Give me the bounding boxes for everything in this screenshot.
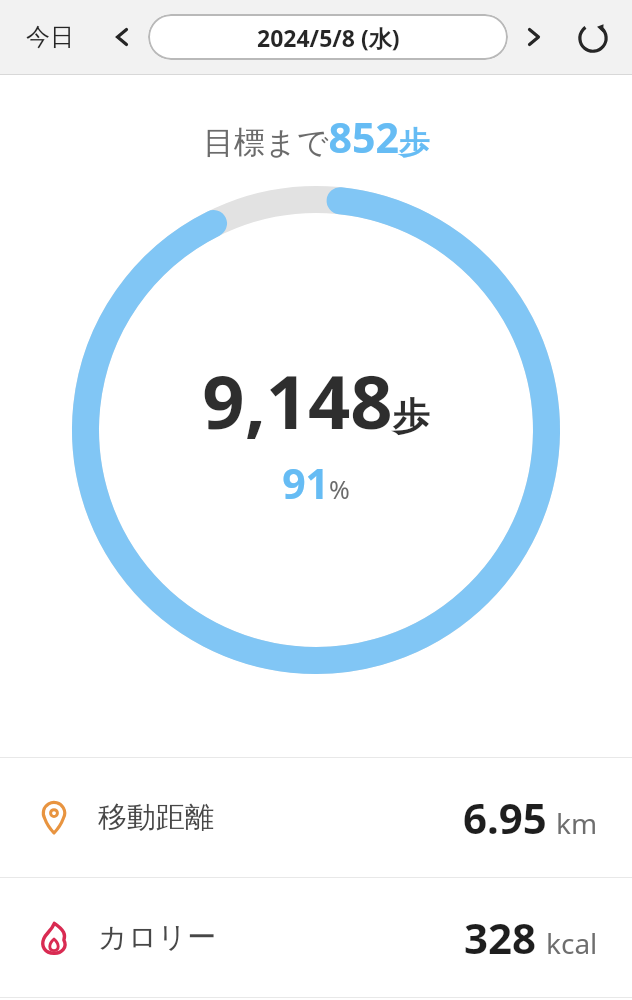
button[interactable]: Previous day	[102, 17, 142, 57]
staticText: 328	[464, 909, 537, 966]
staticText: カロリー	[98, 919, 217, 956]
staticText: kcal	[546, 924, 598, 962]
staticText: km	[556, 804, 598, 842]
button[interactable]: 移動距離	[0, 758, 632, 877]
button[interactable]: カロリー	[0, 878, 632, 997]
button[interactable]: Refresh	[568, 12, 618, 62]
staticText: 91%	[282, 455, 350, 511]
staticText: 今日	[26, 22, 74, 52]
staticText: 6.95	[463, 789, 547, 846]
staticText: 目標まで852歩	[203, 109, 429, 165]
staticText: 9,148歩	[202, 350, 430, 451]
button[interactable]: 2024/5/8 (水)	[148, 14, 508, 60]
staticText: 移動距離	[98, 799, 214, 836]
button[interactable]: Next day	[514, 17, 554, 57]
staticText: 2024/5/8 (水)	[257, 22, 400, 53]
button[interactable]: 今日	[16, 16, 84, 58]
